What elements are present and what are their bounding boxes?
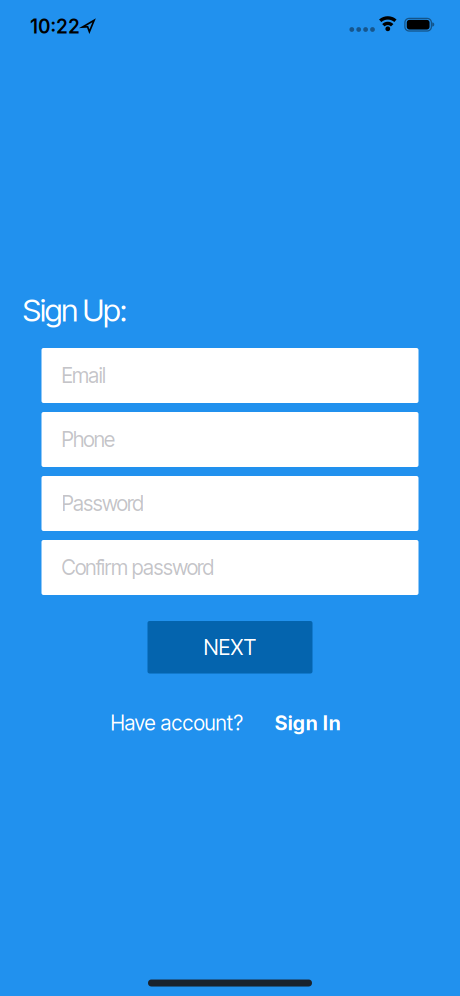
- button[interactable]: Confirm password: [41, 540, 418, 595]
- staticText: Phone: [61, 427, 115, 452]
- staticText: NEXT: [203, 634, 256, 660]
- button[interactable]: Sign In: [274, 711, 340, 735]
- staticText: Password: [61, 491, 144, 516]
- staticText: Email: [61, 363, 106, 388]
- staticText: Sign In: [274, 711, 340, 735]
- button[interactable]: NEXT: [147, 621, 312, 673]
- button[interactable]: Phone: [41, 412, 418, 467]
- staticText: 10:22: [30, 15, 80, 38]
- staticText: Have account?: [110, 710, 243, 735]
- staticText: Confirm password: [61, 555, 214, 580]
- staticText: Sign Up:: [22, 291, 127, 329]
- button[interactable]: Password: [41, 476, 418, 531]
- button[interactable]: Email: [41, 348, 418, 403]
